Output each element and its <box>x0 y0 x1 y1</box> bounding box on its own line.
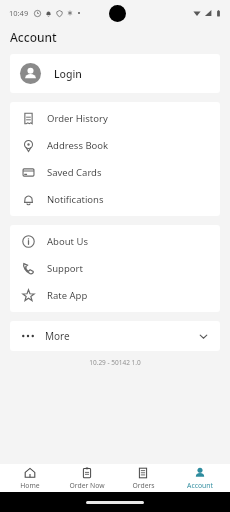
button[interactable]: Order Now <box>60 465 114 492</box>
staticText: Account <box>10 29 57 45</box>
staticText: Login <box>54 67 82 81</box>
staticText: 10.29 - 50142 1.0 <box>0 358 230 367</box>
staticText: Support <box>47 262 83 275</box>
staticText: Address Book <box>47 139 109 152</box>
staticText: Order Now <box>69 481 105 490</box>
staticText: Home <box>20 481 40 490</box>
button[interactable]: Rate App <box>10 282 220 309</box>
staticText: Orders <box>132 481 155 490</box>
staticText: Order History <box>47 112 108 125</box>
staticText: Saved Cards <box>47 166 102 179</box>
button[interactable]: Address Book <box>10 132 220 159</box>
button[interactable]: Order History <box>10 105 220 132</box>
staticText: Notifications <box>47 193 104 206</box>
staticText: 10:49 <box>9 8 29 18</box>
staticText: About Us <box>47 235 88 248</box>
button[interactable]: Notifications <box>10 186 220 213</box>
staticText: More <box>45 329 70 343</box>
button[interactable]: Home <box>3 465 57 492</box>
button[interactable]: Saved Cards <box>10 159 220 186</box>
button[interactable]: More <box>10 321 220 351</box>
button[interactable]: Account <box>173 465 227 492</box>
button[interactable]: Orders <box>116 465 170 492</box>
button[interactable]: Support <box>10 255 220 282</box>
button[interactable]: Login <box>10 54 220 93</box>
staticText: Rate App <box>47 289 88 302</box>
button[interactable]: About Us <box>10 228 220 255</box>
staticText: Account <box>187 481 213 490</box>
